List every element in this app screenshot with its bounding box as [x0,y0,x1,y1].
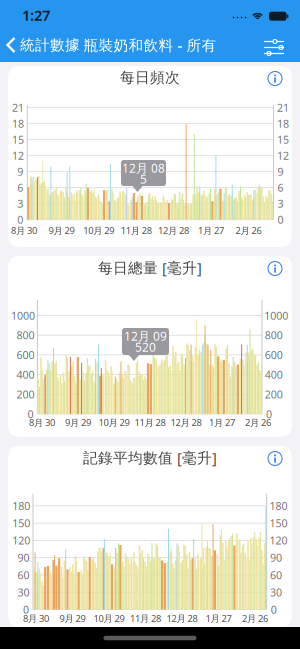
staticText: 90 [270,551,282,565]
staticText: 8月 30 [23,612,49,624]
staticText: 15 [12,133,24,147]
staticText: 每日頻次 [120,68,180,86]
staticText: 800 [16,328,34,342]
staticText: 1月 27 [205,612,231,624]
staticText: 11月 28 [121,224,152,237]
staticText: 0 [277,213,283,227]
staticText: 6 [17,181,23,195]
staticText: 12 [277,149,289,163]
staticText: 90 [18,551,30,565]
staticText: 30 [18,585,30,599]
staticText: 180 [12,499,30,513]
staticText: 瓶裝奶和飲料 - 所有 [83,35,216,55]
staticText: 6 [277,181,283,195]
button[interactable]: About 每日總量 [毫升] [267,261,282,276]
staticText: 150 [270,516,288,530]
button[interactable]: Back [6,36,80,54]
staticText: 15 [277,133,289,147]
staticText: 120 [270,533,288,547]
staticText: 60 [18,568,30,582]
staticText: 每日總量 [毫升] [98,258,202,277]
staticText: 10月 29 [93,612,124,624]
staticText: 12月 28 [170,416,201,429]
staticText: 8月 30 [29,416,55,429]
staticText: 1月 27 [198,224,224,237]
staticText: 3 [17,197,23,211]
staticText: 1000 [264,308,288,323]
staticText: 600 [265,348,283,362]
staticText: 0 [27,407,33,421]
staticText: 記錄平均數值 [毫升] [83,448,217,467]
staticText: 統計數據 [20,36,80,54]
staticText: 1000 [11,308,35,323]
staticText: 18 [12,117,24,131]
staticText: 400 [16,367,34,382]
staticText: 9 [277,165,283,179]
staticText: 520 [135,339,156,355]
staticText: 5 [140,171,147,187]
button[interactable]: Filter [262,37,286,57]
staticText: 120 [12,533,30,547]
staticText: 0 [266,407,272,421]
staticText: 150 [12,516,30,530]
staticText: 0 [271,602,277,617]
staticText: 400 [265,367,283,382]
staticText: 3 [277,197,283,211]
staticText: 9月 29 [59,612,85,624]
staticText: 2月 26 [235,224,261,237]
staticText: 600 [16,348,34,362]
staticText: 30 [270,585,282,599]
staticText: 12月 08 [122,160,165,176]
staticText: 12 [12,149,24,163]
staticText: 2月 26 [242,612,268,624]
staticText: 18 [277,117,289,131]
staticText: 9月 29 [65,416,91,429]
staticText: 0 [17,213,23,227]
staticText: 21 [277,101,289,115]
button[interactable]: About 每日頻次 [267,71,282,86]
staticText: 180 [270,499,288,513]
staticText: 8月 30 [11,224,37,237]
staticText: 60 [270,568,282,582]
staticText: 12月 28 [158,224,189,237]
staticText: 11月 28 [134,416,165,429]
staticText: 200 [265,387,283,401]
staticText: 11月 28 [130,612,161,624]
staticText: 0 [23,602,29,617]
button[interactable]: About 記錄平均數值 [毫升] [267,451,282,466]
staticText: 10月 29 [83,224,114,237]
staticText: 12月 09 [124,328,167,344]
staticText: 200 [16,387,34,401]
staticText: 800 [265,328,283,342]
staticText: 1月 27 [209,416,235,429]
staticText: 10月 29 [98,416,129,429]
staticText: 1:27 [22,5,50,25]
staticText: 2月 26 [245,416,271,429]
staticText: 9月 29 [48,224,74,237]
staticText: 21 [12,101,24,115]
staticText: 12月 28 [166,612,197,624]
staticText: 9 [17,165,23,179]
